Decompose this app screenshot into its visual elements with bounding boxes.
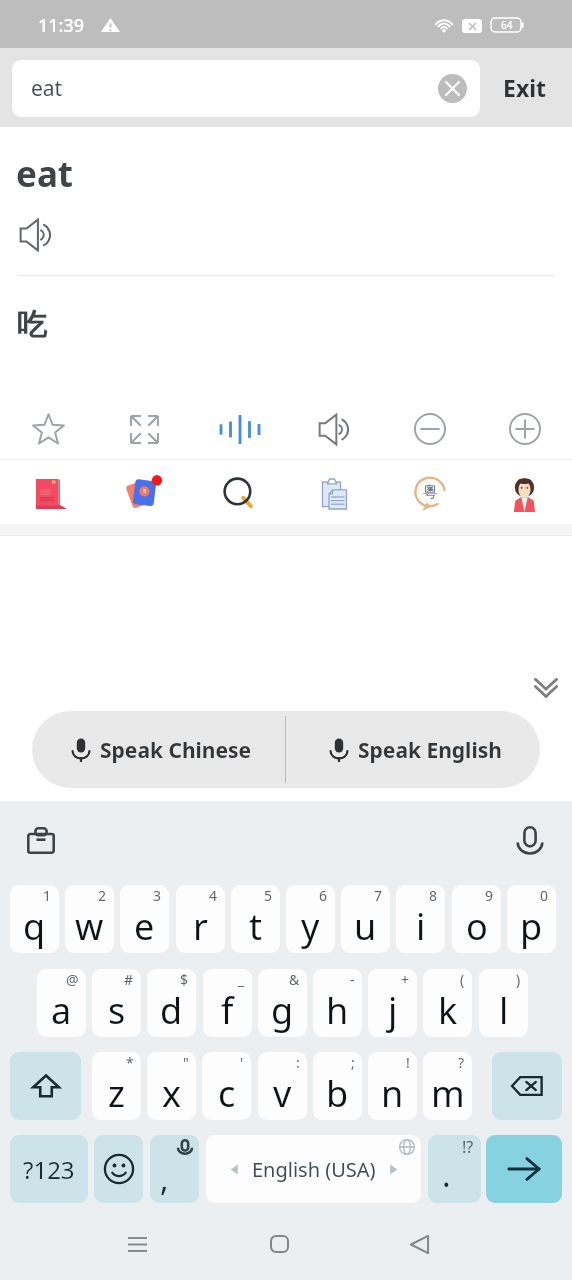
staticText: n [381, 1069, 404, 1118]
button[interactable]: English (USA) [206, 1135, 421, 1203]
staticText: m [431, 1069, 465, 1118]
button[interactable]: ?123 [10, 1135, 88, 1203]
staticText: $ [180, 970, 189, 989]
button[interactable]: Clipboard [17, 816, 65, 864]
staticText: i [416, 902, 426, 951]
staticText: ' [240, 1053, 244, 1072]
button[interactable]: @ [37, 969, 86, 1037]
staticText: 11:39 [38, 13, 85, 38]
staticText: & [289, 970, 300, 989]
staticText: # [124, 970, 134, 989]
button[interactable]: Expand [96, 400, 192, 458]
button[interactable]: 3 [120, 885, 169, 953]
staticText: ! [406, 1053, 410, 1072]
button[interactable]: , [150, 1135, 199, 1203]
staticText: : [296, 1053, 300, 1072]
staticText: 1 [43, 886, 52, 905]
button[interactable]: Search [192, 465, 287, 523]
staticText: b [326, 1069, 349, 1118]
button[interactable]: # [92, 969, 141, 1037]
button[interactable]: 4 [176, 885, 225, 953]
button[interactable]: Clear [438, 74, 467, 103]
button[interactable]: eat [12, 60, 480, 117]
button[interactable]: 1 [10, 885, 59, 953]
button[interactable]: Favorite [0, 400, 96, 458]
button[interactable]: Emoji [94, 1135, 143, 1203]
staticText: p [520, 902, 543, 951]
staticText: 2 [98, 886, 107, 905]
staticText: a [51, 986, 72, 1035]
button[interactable]: & [258, 969, 307, 1037]
button[interactable]: Dictionary [0, 465, 96, 523]
staticText: 4 [209, 886, 218, 905]
button[interactable]: 2 [65, 885, 114, 953]
button[interactable]: ) [479, 969, 528, 1037]
button[interactable]: Speak [287, 400, 382, 458]
staticText: j [388, 986, 398, 1035]
staticText: 吃 [17, 306, 47, 344]
button[interactable]: 0 [507, 885, 556, 953]
button[interactable]: Pronounce [14, 213, 58, 257]
button[interactable]: Assistant [477, 465, 572, 523]
staticText: 粵 [423, 483, 438, 502]
button[interactable]: - [313, 969, 362, 1037]
staticText: @ [66, 970, 79, 989]
button[interactable]: Home [255, 1220, 303, 1268]
staticText: l [499, 986, 509, 1035]
staticText: " [183, 1053, 189, 1072]
button[interactable]: Collapse [524, 666, 568, 710]
staticText: y [301, 902, 320, 951]
button[interactable]: : [258, 1052, 307, 1120]
button[interactable]: ' [202, 1052, 251, 1120]
staticText: _ [238, 970, 245, 989]
button[interactable]: ! [368, 1052, 417, 1120]
staticText: u [354, 902, 377, 951]
button[interactable]: * [92, 1052, 141, 1120]
button[interactable]: ; [313, 1052, 362, 1120]
staticText: English (USA) [252, 1156, 376, 1183]
button[interactable]: _ [203, 969, 252, 1037]
button[interactable]: 8 [396, 885, 445, 953]
button[interactable]: 5 [231, 885, 280, 953]
staticText: r [193, 902, 208, 951]
button[interactable]: ? [423, 1052, 472, 1120]
button[interactable]: 9 [452, 885, 501, 953]
button[interactable]: ( [423, 969, 472, 1037]
staticText: t [249, 902, 262, 951]
button[interactable]: Backspace [492, 1052, 562, 1120]
button[interactable]: Back [395, 1220, 443, 1268]
button[interactable]: Zoom in [477, 400, 572, 458]
staticText: k [438, 986, 458, 1035]
button[interactable]: Zoom out [382, 400, 477, 458]
button[interactable]: Enter [486, 1135, 562, 1203]
staticText: 64 [501, 18, 513, 32]
staticText: ? [458, 1053, 465, 1072]
staticText: g [271, 986, 294, 1035]
button[interactable]: Clipboard [287, 465, 382, 523]
button[interactable]: $ [147, 969, 196, 1037]
button[interactable]: Cantonese [382, 465, 477, 523]
button[interactable]: Shift [10, 1052, 81, 1120]
button[interactable]: Exit [489, 48, 561, 127]
button[interactable]: Flashcards [96, 465, 192, 523]
staticText: Speak Chinese [100, 736, 252, 765]
button[interactable]: !? [428, 1135, 481, 1203]
button[interactable]: 6 [286, 885, 335, 953]
button[interactable]: 7 [341, 885, 390, 953]
button[interactable]: Speak English [286, 711, 540, 788]
button[interactable]: Recents [113, 1220, 161, 1268]
staticText: + [401, 970, 410, 989]
button[interactable]: " [147, 1052, 196, 1120]
staticText: 6 [319, 886, 328, 905]
button[interactable]: Waveform [192, 400, 287, 458]
staticText: 3 [153, 886, 162, 905]
staticText: e [134, 902, 155, 951]
staticText: eat [16, 150, 74, 198]
staticText: Speak English [358, 736, 502, 765]
staticText: z [108, 1069, 125, 1118]
button[interactable]: Voice input [506, 816, 554, 864]
button[interactable]: + [368, 969, 417, 1037]
staticText: 9 [485, 886, 494, 905]
button[interactable]: Speak Chinese [32, 711, 285, 788]
staticText: w [75, 902, 104, 951]
